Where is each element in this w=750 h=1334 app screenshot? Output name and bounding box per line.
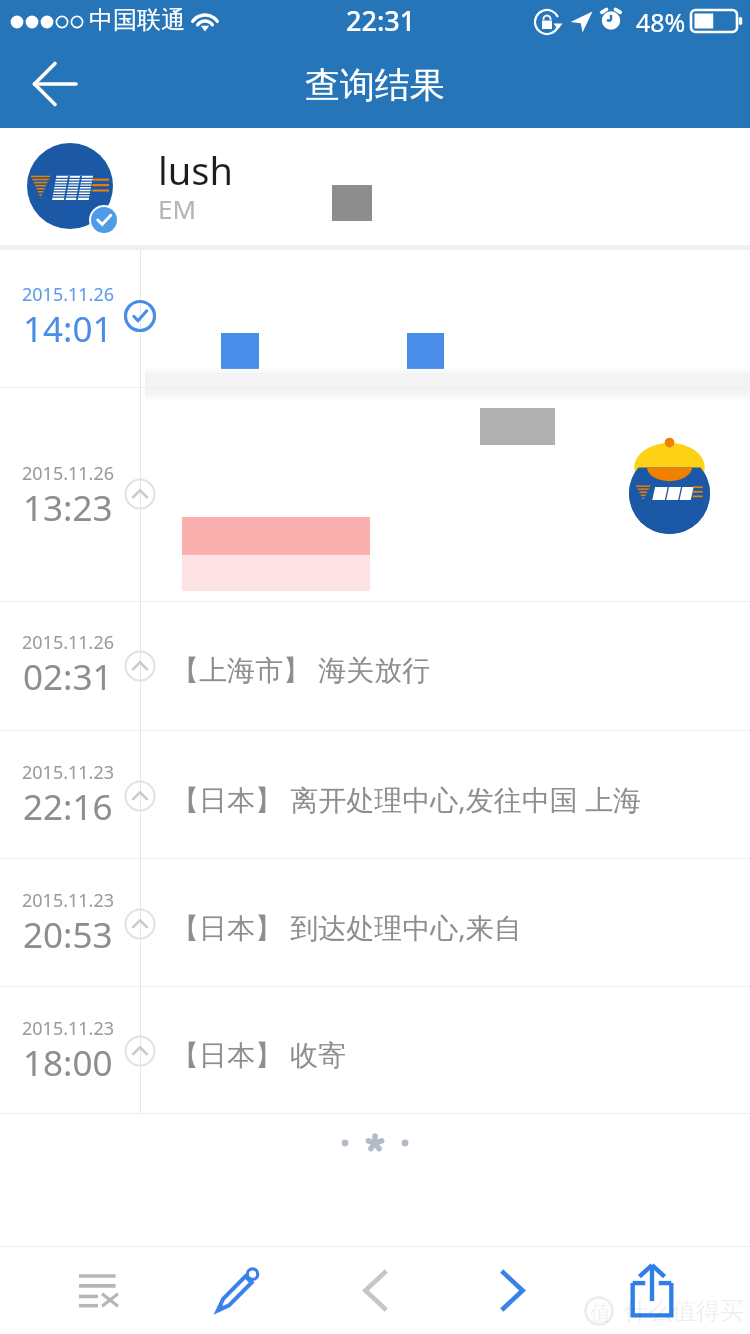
staticText: 值 bbox=[590, 1300, 611, 1326]
staticText: 2015.11.23 bbox=[22, 888, 115, 913]
button[interactable]: Share bbox=[590, 1246, 714, 1334]
staticText: 【日本】 离开处理中心,发往中国 上海 bbox=[171, 780, 642, 818]
staticText: 2015.11.26 bbox=[22, 630, 115, 655]
button[interactable]: List bbox=[36, 1246, 160, 1334]
staticText: 什么值得买 bbox=[624, 1296, 744, 1326]
staticText: 2015.11.26 bbox=[22, 282, 115, 307]
button[interactable]: 2015.11.23 bbox=[0, 860, 750, 988]
staticText: 查询结果 bbox=[305, 63, 445, 107]
staticText: 中国联通 bbox=[89, 5, 185, 35]
button[interactable]: 2015.11.26 bbox=[0, 250, 750, 387]
button[interactable]: Previous bbox=[313, 1246, 437, 1334]
staticText: 2015.11.23 bbox=[22, 1016, 115, 1041]
staticText: 【上海市】 海关放行 bbox=[171, 650, 431, 688]
staticText: 48% bbox=[636, 5, 686, 39]
staticText: 2015.11.26 bbox=[22, 461, 115, 486]
staticText: 02:31 bbox=[23, 653, 113, 701]
button[interactable]: 2015.11.26 bbox=[0, 602, 750, 731]
staticText: 22:16 bbox=[23, 783, 113, 831]
button[interactable]: Edit bbox=[175, 1246, 299, 1334]
staticText: EM bbox=[158, 191, 197, 226]
staticText: 14:01 bbox=[23, 305, 113, 353]
staticText: 22:31 bbox=[346, 2, 416, 39]
staticText: lush bbox=[158, 144, 233, 196]
button[interactable]: 2015.11.23 bbox=[0, 988, 750, 1115]
button[interactable]: 2015.11.23 bbox=[0, 732, 750, 860]
staticText: 18:00 bbox=[23, 1039, 113, 1087]
button[interactable]: Back bbox=[10, 40, 100, 128]
staticText: 13:23 bbox=[23, 484, 113, 532]
staticText: 2015.11.23 bbox=[22, 760, 115, 785]
button[interactable]: 2015.11.26 bbox=[0, 388, 750, 601]
staticText: 【日本】 收寄 bbox=[171, 1035, 347, 1073]
button[interactable]: Next bbox=[451, 1246, 575, 1334]
staticText: 20:53 bbox=[23, 911, 113, 959]
button[interactable]: lush bbox=[0, 128, 750, 250]
staticText: 【日本】 到达处理中心,来自 bbox=[171, 908, 522, 946]
